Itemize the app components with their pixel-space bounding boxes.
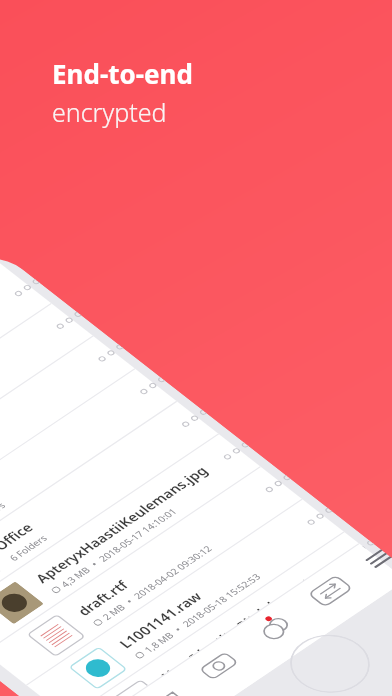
button[interactable]: More options [344, 538, 377, 562]
staticText: encrypted [52, 95, 167, 129]
staticText: Archive [0, 479, 5, 522]
button[interactable]: draft.rtf [0, 457, 304, 696]
button[interactable]: More options [93, 342, 126, 366]
staticText: 3 Folders [0, 499, 9, 532]
staticText: End-to-end [52, 56, 193, 91]
button[interactable]: Home [271, 620, 389, 696]
staticText: draft.rtf [72, 575, 133, 620]
staticText: 4,3 MB [57, 563, 93, 590]
staticText: 2018-05-17 14:10:01 [95, 503, 180, 567]
staticText: New Identity Pitch keynote [156, 564, 323, 690]
button[interactable]: Chat [240, 602, 311, 655]
staticText: 2018-04-02 09:30:12 [130, 540, 215, 604]
button[interactable]: More options [176, 407, 209, 432]
button[interactable]: Files [129, 676, 200, 696]
button[interactable]: Transfer [295, 565, 366, 618]
staticText: 2018-05-18 15:52:53 [179, 568, 264, 632]
button[interactable]: Invoices [0, 326, 137, 565]
staticText: ApteryxHaastiiKeulemans.jpg [30, 456, 212, 592]
button[interactable]: L1001141.raw [26, 489, 346, 696]
staticText: 1,8 MB [141, 629, 177, 656]
staticText: 2018-05-18 15:52:53 [221, 601, 305, 664]
button[interactable]: Photos 2018 [0, 293, 95, 533]
button[interactable]: Keynotes [0, 261, 53, 500]
button[interactable]: More options [134, 374, 167, 399]
button[interactable]: ApteryxHaastiiKeulemans.jpg [0, 424, 262, 663]
button[interactable]: More options [9, 276, 42, 301]
staticText: 3,4 MB [183, 661, 219, 688]
staticText: 6 Folders [6, 531, 50, 564]
button[interactable]: Camera [183, 640, 255, 693]
button[interactable]: More options [302, 505, 335, 530]
button[interactable]: More options [260, 472, 293, 497]
staticText: 2 MB [99, 601, 128, 623]
button[interactable]: More options [218, 440, 251, 464]
button[interactable]: More options [51, 309, 84, 334]
button[interactable]: Office [0, 391, 220, 631]
button[interactable]: New Identity Pitch keynote [68, 522, 388, 696]
staticText: L1001141.raw [114, 585, 206, 654]
staticText: Office [0, 518, 38, 555]
button[interactable]: Menu [346, 539, 392, 582]
button[interactable]: Archive [0, 359, 178, 598]
